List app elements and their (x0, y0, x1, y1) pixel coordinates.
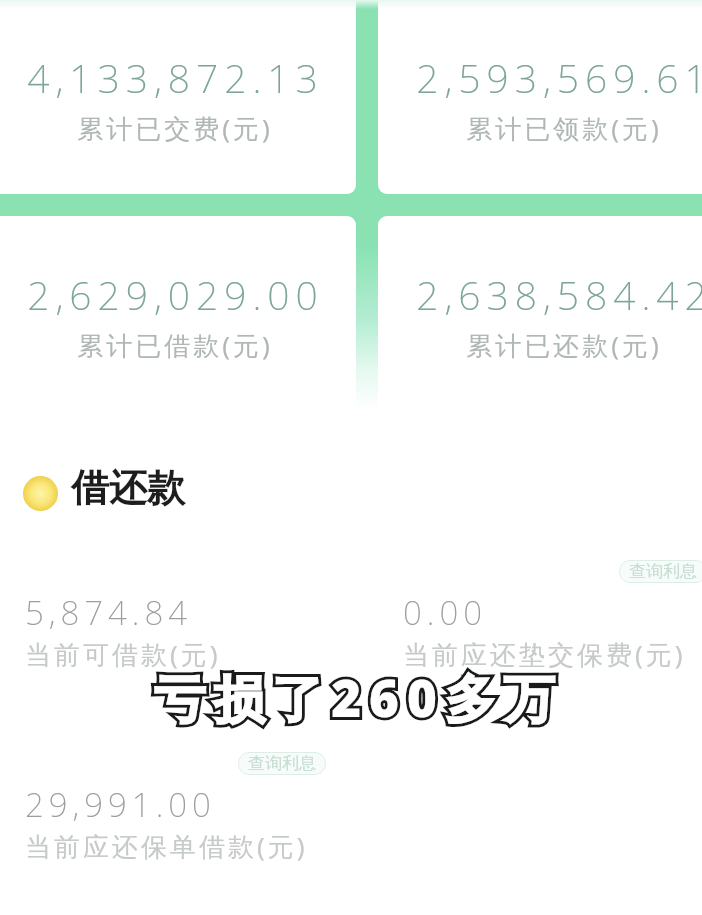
staticText: 当前应还垫交保费(元) (403, 636, 686, 672)
staticText: 2,593,569.61 (416, 51, 702, 104)
button[interactable]: 借还款 (22, 464, 185, 512)
staticText: 借还款 (71, 464, 185, 512)
staticText: 亏损了260多万 (154, 662, 563, 732)
staticText: 0.00 (403, 590, 488, 635)
button[interactable]: 5,874.84 (25, 590, 221, 672)
staticText: 5,874.84 (25, 590, 193, 635)
button[interactable]: 0.00 (403, 590, 686, 672)
staticText: 累计已借款(元) (77, 327, 273, 363)
staticText: 查询利息 (629, 561, 697, 582)
staticText: 累计已领款(元) (466, 110, 662, 146)
staticText: 累计已还款(元) (466, 327, 662, 363)
button[interactable]: 查询利息 (619, 560, 702, 583)
staticText: 亏损了260多万 (154, 662, 563, 732)
staticText: 29,991.00 (25, 782, 216, 827)
staticText: 累计已交费(元) (77, 110, 273, 146)
button[interactable]: 4,133,872.13 (0, 51, 375, 146)
button[interactable]: 2,638,584.42 (364, 268, 702, 363)
staticText: 4,133,872.13 (27, 51, 324, 104)
staticText: 查询利息 (248, 753, 316, 774)
other: 借还款 (23, 476, 58, 511)
staticText: 2,629,029.00 (27, 268, 324, 321)
button[interactable]: 查询利息 (238, 752, 326, 775)
staticText: 当前应还保单借款(元) (25, 828, 308, 864)
button[interactable]: 2,593,569.61 (364, 51, 702, 146)
staticText: 2,638,584.42 (416, 268, 702, 321)
button[interactable]: 2,629,029.00 (0, 268, 375, 363)
staticText: 当前可借款(元) (25, 636, 221, 672)
button[interactable]: 29,991.00 (25, 782, 308, 864)
